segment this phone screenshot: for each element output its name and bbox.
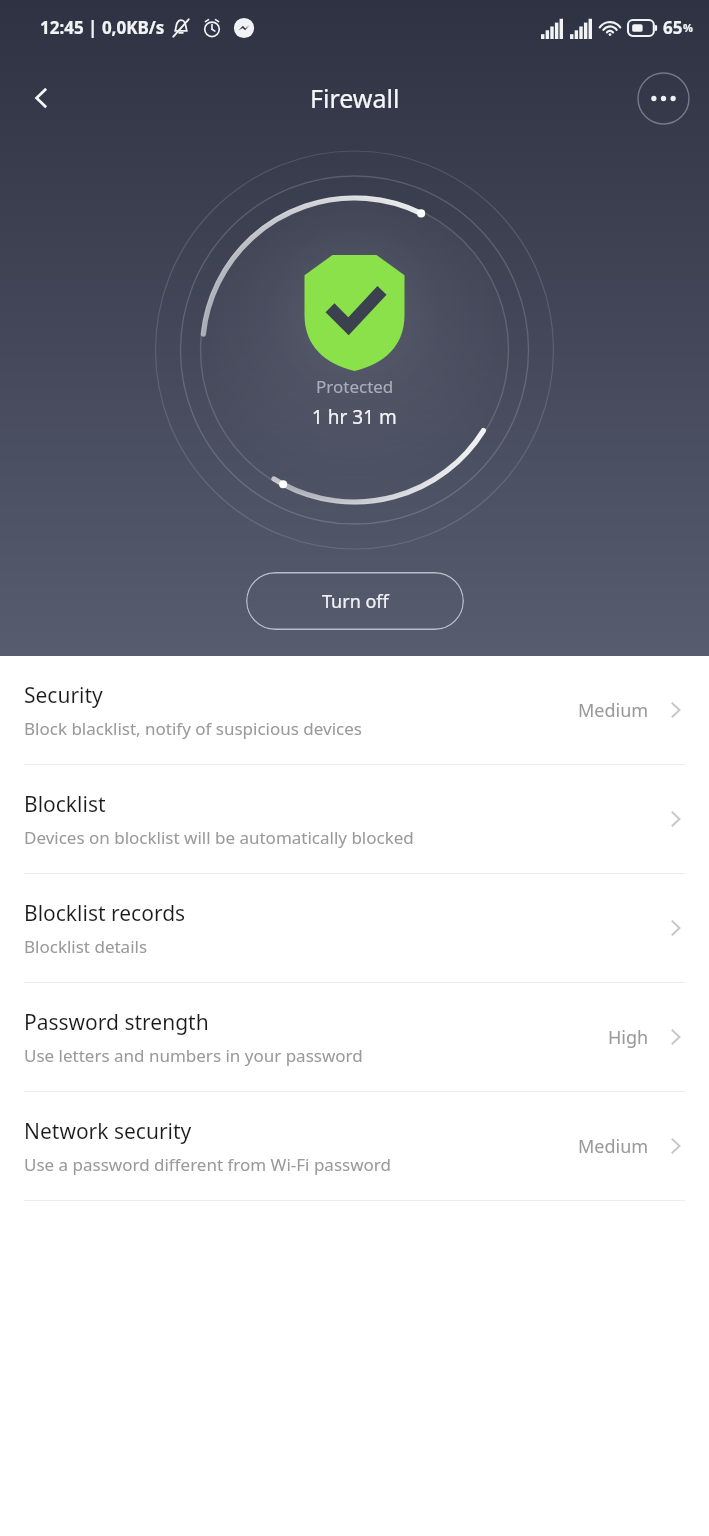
button[interactable]: Blocklist records bbox=[0, 874, 709, 982]
staticText: 12:45 | 0,0KB/s bbox=[40, 16, 165, 39]
staticText: Block blacklist, notify of suspicious de… bbox=[24, 717, 362, 740]
staticText: Blocklist bbox=[24, 790, 106, 819]
button[interactable]: More options bbox=[636, 71, 691, 126]
staticText: Protected bbox=[316, 375, 394, 398]
staticText: High bbox=[608, 1025, 649, 1050]
staticText: Medium bbox=[578, 698, 649, 723]
staticText: Use a password different from Wi-Fi pass… bbox=[24, 1153, 391, 1176]
staticText: Password strength bbox=[24, 1008, 209, 1037]
button[interactable]: Password strength bbox=[0, 983, 709, 1091]
staticText: % bbox=[683, 20, 693, 35]
staticText: Turn off bbox=[322, 589, 389, 614]
button[interactable]: Turn off bbox=[246, 572, 464, 630]
staticText: Firewall bbox=[310, 81, 400, 115]
staticText: Medium bbox=[578, 1134, 649, 1159]
staticText: Blocklist details bbox=[24, 935, 148, 958]
staticText: Network security bbox=[24, 1117, 192, 1146]
button[interactable]: Security bbox=[0, 656, 709, 764]
staticText: Security bbox=[24, 681, 103, 710]
staticText: 65 bbox=[663, 16, 683, 39]
staticText: Use letters and numbers in your password bbox=[24, 1044, 363, 1067]
staticText: Devices on blocklist will be automatical… bbox=[24, 826, 414, 849]
button[interactable]: Back bbox=[10, 67, 72, 129]
button[interactable]: Blocklist bbox=[0, 765, 709, 873]
button[interactable]: Network security bbox=[0, 1092, 709, 1200]
staticText: 1 hr 31 m bbox=[312, 404, 397, 430]
staticText: Blocklist records bbox=[24, 899, 186, 928]
